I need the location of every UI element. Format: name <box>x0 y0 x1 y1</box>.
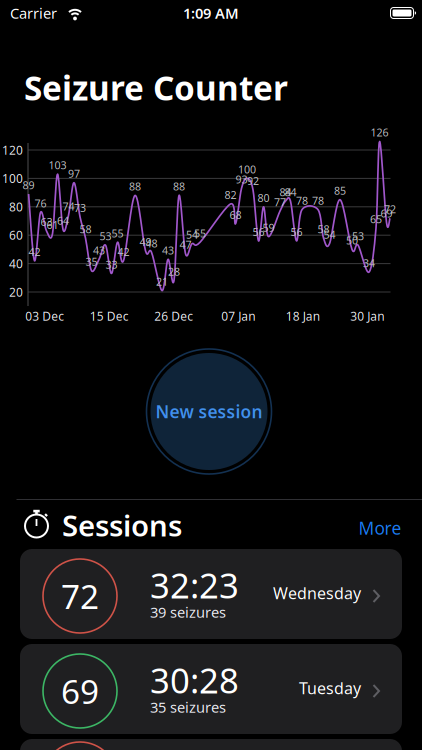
staticText: 53 <box>99 229 111 243</box>
button[interactable]: 75 <box>20 739 402 750</box>
staticText: 55 <box>194 226 206 240</box>
staticText: 07 Jan <box>221 308 255 324</box>
staticText: 53 <box>352 229 364 243</box>
staticText: 68 <box>229 208 241 222</box>
staticText: 47 <box>179 238 191 252</box>
button[interactable]: 69 <box>20 644 402 734</box>
staticText: 42 <box>28 245 40 259</box>
staticText: 77 <box>274 195 286 209</box>
staticText: 65 <box>370 212 382 226</box>
staticText: 43 <box>93 243 105 257</box>
staticText: 78 <box>312 194 324 208</box>
staticText: 61 <box>46 218 58 232</box>
staticText: 84 <box>279 185 291 199</box>
staticText: 42 <box>117 245 129 259</box>
staticText: 56 <box>290 225 302 239</box>
button[interactable]: 72 <box>20 549 402 639</box>
staticText: 1:09 AM <box>183 3 239 23</box>
staticText: 48 <box>145 236 157 250</box>
staticText: 80 <box>257 191 269 205</box>
staticText: 97 <box>68 167 80 181</box>
staticText: 88 <box>129 179 141 194</box>
staticText: 64 <box>57 213 69 228</box>
staticText: 28 <box>168 265 180 279</box>
staticText: 55 <box>111 226 123 240</box>
staticText: Wednesday <box>273 582 361 604</box>
button[interactable]: New session <box>144 346 274 476</box>
staticText: 63 <box>40 215 52 229</box>
staticText: 32:23 <box>150 562 239 608</box>
staticText: 35 <box>85 255 97 269</box>
staticText: 58 <box>79 222 91 236</box>
staticText: 100 <box>2 170 23 186</box>
staticText: 78 <box>296 194 308 208</box>
staticText: 120 <box>2 142 23 158</box>
staticText: 60 <box>9 227 23 243</box>
staticText: 85 <box>334 184 346 198</box>
staticText: 30 Jan <box>350 308 384 324</box>
staticText: 80 <box>9 199 23 215</box>
staticText: 20 <box>9 284 23 300</box>
staticText: 73 <box>74 201 86 215</box>
staticText: Sessions <box>62 505 182 544</box>
staticText: 43 <box>162 243 174 257</box>
staticText: 40 <box>9 256 23 271</box>
staticText: 89 <box>23 178 35 192</box>
staticText: 18 Jan <box>286 308 320 324</box>
button[interactable]: More <box>358 516 401 539</box>
staticText: 84 <box>284 185 296 199</box>
staticText: 34 <box>363 256 375 270</box>
staticText: 69 <box>61 669 99 713</box>
staticText: 35 seizures <box>150 697 226 717</box>
staticText: 74 <box>62 199 74 213</box>
staticText: 39 seizures <box>150 602 226 622</box>
staticText: 72 <box>384 202 396 216</box>
staticText: 21 <box>156 274 168 289</box>
staticText: 76 <box>34 196 46 211</box>
staticText: 93 <box>235 172 247 186</box>
staticText: 30:28 <box>150 657 239 703</box>
staticText: 33 <box>105 257 117 272</box>
staticText: More <box>358 516 401 539</box>
staticText: 54 <box>186 228 198 242</box>
staticText: 88 <box>173 179 185 194</box>
staticText: 72 <box>61 574 99 618</box>
staticText: 49 <box>139 235 151 249</box>
staticText: 56 <box>252 225 264 239</box>
staticText: 92 <box>247 174 259 188</box>
staticText: 69 <box>380 206 392 220</box>
staticText: 15 Dec <box>90 308 129 324</box>
staticText: 100 <box>238 162 256 176</box>
staticText: 54 <box>323 228 335 242</box>
staticText: 03 Dec <box>25 308 64 324</box>
staticText: 126 <box>371 125 389 140</box>
staticText: 58 <box>317 222 329 236</box>
staticText: 26 Dec <box>154 308 193 324</box>
staticText: Carrier <box>10 3 57 23</box>
staticText: 50 <box>346 233 358 247</box>
staticText: 103 <box>48 158 66 172</box>
staticText: Tuesday <box>299 677 361 699</box>
staticText: 59 <box>262 220 274 235</box>
staticText: New session <box>155 400 262 423</box>
staticText: Seizure Counter <box>24 65 288 110</box>
staticText: 82 <box>224 188 236 202</box>
